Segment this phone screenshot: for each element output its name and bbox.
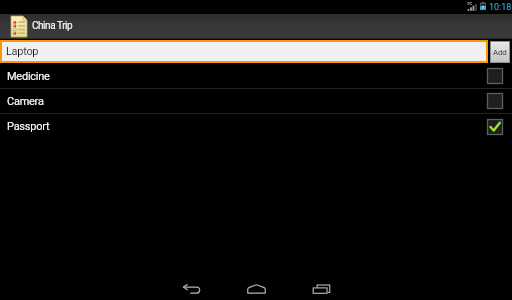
staticText: Passport bbox=[7, 120, 50, 133]
staticText: Camera bbox=[7, 95, 44, 108]
button[interactable]: Back bbox=[160, 268, 224, 300]
button[interactable]: Laptop bbox=[2, 42, 486, 61]
staticText: China Trip bbox=[32, 20, 73, 32]
button[interactable]: Add bbox=[491, 42, 509, 62]
button[interactable]: Recent apps bbox=[290, 268, 354, 300]
button[interactable]: Passport bbox=[0, 114, 512, 139]
staticText: 10:18 bbox=[489, 2, 512, 13]
staticText: Add bbox=[493, 48, 507, 57]
button[interactable]: Camera bbox=[0, 89, 512, 113]
button[interactable]: Medicine bbox=[0, 64, 512, 88]
staticText: Medicine bbox=[7, 70, 50, 83]
button[interactable]: Home bbox=[224, 268, 288, 300]
staticText: Laptop bbox=[6, 45, 39, 58]
